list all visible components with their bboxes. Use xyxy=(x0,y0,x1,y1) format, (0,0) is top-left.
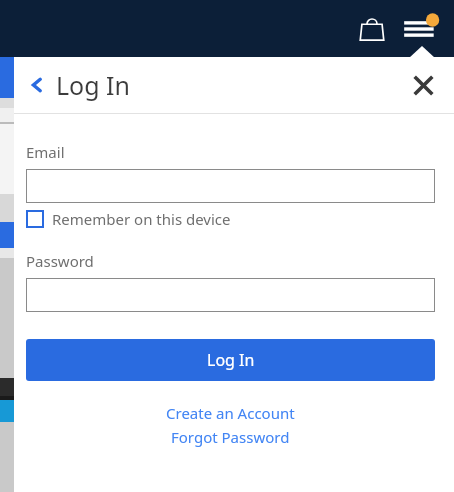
button[interactable]: Menu xyxy=(396,5,444,53)
staticText: Remember on this device xyxy=(52,209,231,229)
button[interactable]: Log In xyxy=(22,68,131,102)
staticText: Create an Account xyxy=(166,403,295,423)
staticText: Email xyxy=(26,142,65,162)
button[interactable] xyxy=(26,169,435,203)
button[interactable]: Close xyxy=(404,66,442,104)
button[interactable]: Shopping bag xyxy=(350,7,394,51)
button[interactable]: Log In xyxy=(26,339,435,381)
button[interactable]: Create an Account xyxy=(26,403,435,423)
staticText: Log In xyxy=(56,68,131,102)
button[interactable]: Forgot Password xyxy=(26,427,435,447)
staticText: Forgot Password xyxy=(171,427,290,447)
staticText: Log In xyxy=(207,349,255,371)
button[interactable]: Remember on this device xyxy=(26,209,231,229)
staticText: Password xyxy=(26,251,94,271)
button[interactable] xyxy=(26,278,435,312)
